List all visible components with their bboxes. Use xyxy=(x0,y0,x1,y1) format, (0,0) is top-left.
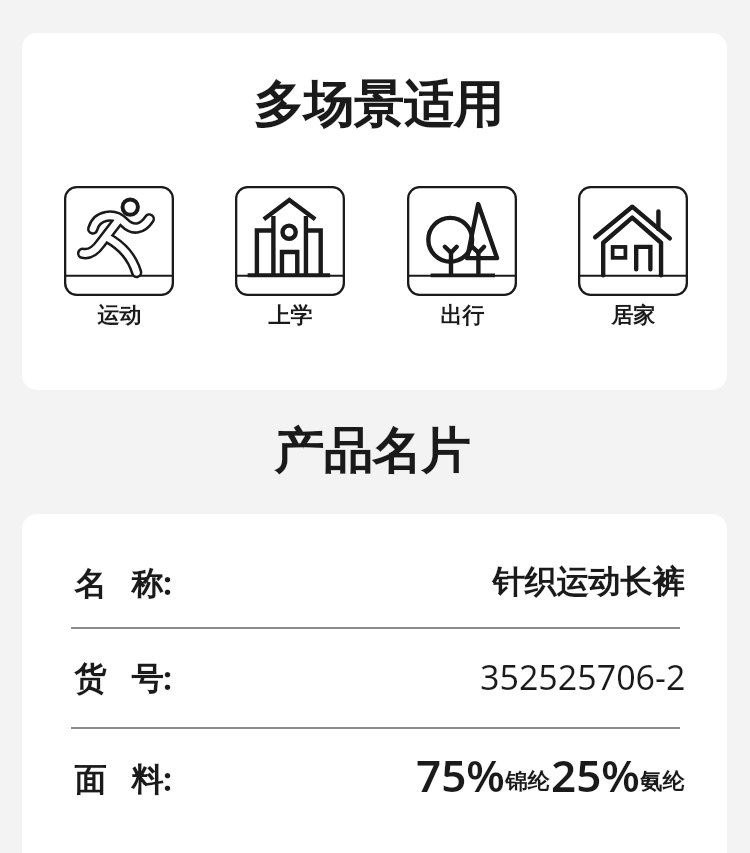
other: 居家 xyxy=(578,186,688,296)
other: 上学 xyxy=(235,186,345,296)
staticText: 面 料: xyxy=(74,757,172,801)
staticText: 氨纶 xyxy=(640,768,684,796)
staticText: 针织运动长裤 xyxy=(492,562,684,602)
staticText: 25% xyxy=(551,745,640,805)
staticText: 75% xyxy=(416,745,505,805)
other: 运动 xyxy=(64,186,174,296)
button[interactable]: 面 料: xyxy=(22,729,727,825)
button[interactable]: 名 称: xyxy=(22,533,727,629)
button[interactable]: 居家 xyxy=(578,186,688,330)
staticText: 运动 xyxy=(97,302,141,330)
staticText: 名 称: xyxy=(74,561,172,605)
staticText: 多场景适用 xyxy=(253,74,503,137)
button[interactable]: 货 号: xyxy=(22,628,727,724)
button[interactable]: 出行 xyxy=(407,186,517,330)
staticText: 货 号: xyxy=(74,656,172,700)
staticText: 出行 xyxy=(440,302,484,330)
staticText: 锦纶 xyxy=(505,768,549,796)
button[interactable]: 上学 xyxy=(235,186,345,330)
other: 出行 xyxy=(407,186,517,296)
staticText: 352525706-2 xyxy=(480,654,686,700)
staticText: 产品名片 xyxy=(274,421,470,483)
staticText: 居家 xyxy=(611,302,655,330)
staticText: 上学 xyxy=(268,302,312,330)
button[interactable]: 运动 xyxy=(64,186,174,330)
